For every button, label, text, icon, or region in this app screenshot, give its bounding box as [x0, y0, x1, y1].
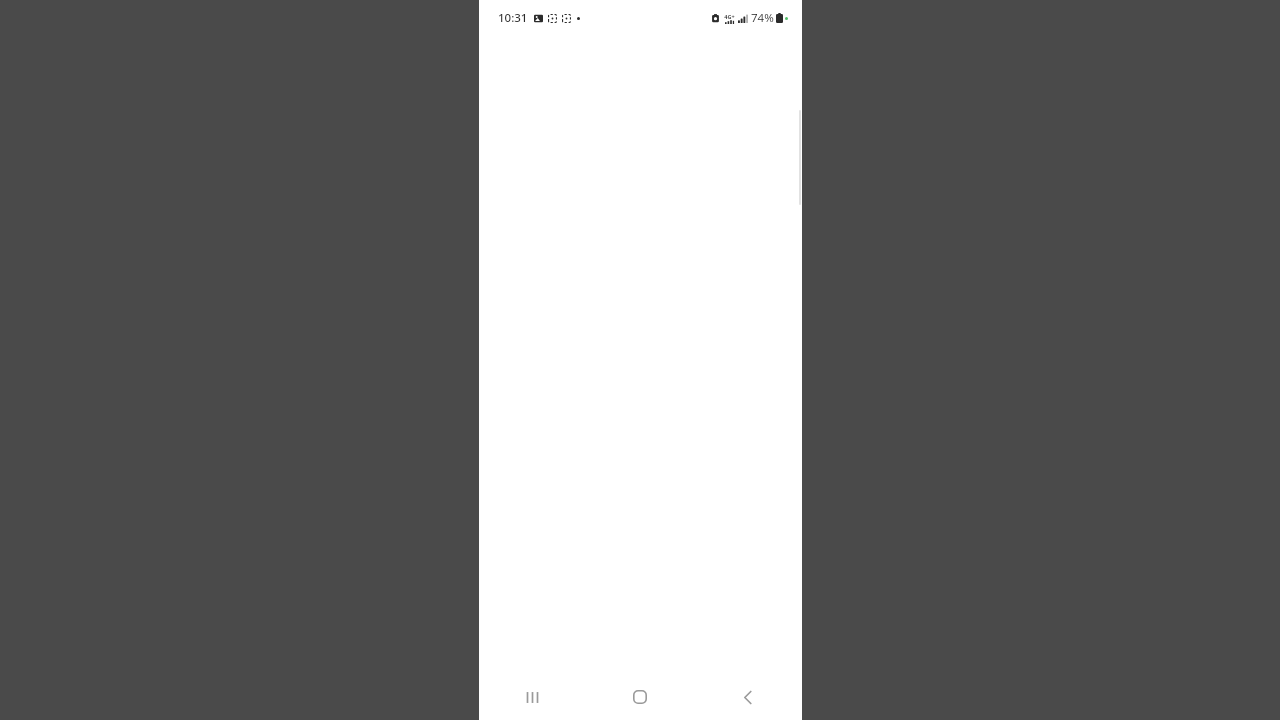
button[interactable]: Home	[586, 674, 694, 720]
button[interactable]: Recent apps	[479, 674, 586, 720]
staticText: 4G+	[724, 13, 735, 20]
staticText: 10:31	[498, 10, 528, 26]
staticText: 74%	[751, 10, 774, 26]
button[interactable]: Back	[694, 674, 802, 720]
